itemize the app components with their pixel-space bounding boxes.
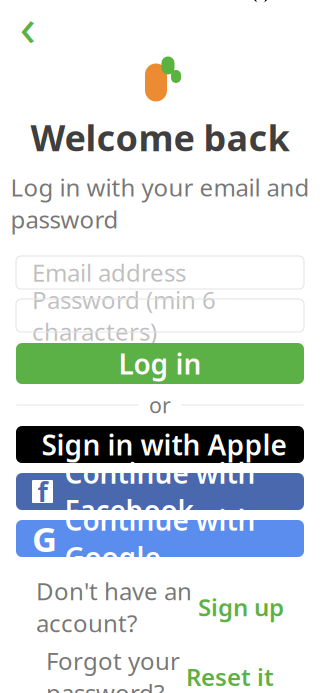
staticText: f	[37, 474, 47, 509]
button[interactable]: Back	[6, 3, 50, 47]
button[interactable]: Log in	[16, 343, 304, 384]
staticText: Forgot your password?	[46, 645, 180, 693]
staticText: Continue with Facebook	[64, 454, 255, 529]
button[interactable]: Email address	[16, 256, 304, 289]
button[interactable]: Forgot your password?	[46, 645, 274, 693]
staticText: Continue with Google	[64, 501, 255, 576]
button[interactable]: f	[16, 473, 304, 510]
staticText: Password (min 6 characters)	[32, 284, 216, 347]
staticText: Don't have an account?	[36, 575, 192, 639]
button[interactable]	[16, 426, 304, 463]
staticText: or	[149, 391, 171, 419]
button[interactable]: Don't have an account?	[36, 575, 284, 639]
button[interactable]: Password (min 6 characters)	[16, 299, 304, 332]
staticText: Log in	[118, 345, 201, 382]
staticText: Sign in with Apple	[41, 426, 286, 463]
staticText: Email address	[32, 257, 186, 288]
staticText: Welcome back	[30, 113, 289, 161]
button[interactable]: G	[16, 520, 304, 557]
staticText: Log in with your email and password	[10, 171, 309, 235]
staticText: Reset it	[186, 661, 274, 693]
staticText: G	[32, 515, 57, 561]
staticText: Sign up	[198, 591, 284, 623]
staticText: ‹	[19, 0, 36, 61]
